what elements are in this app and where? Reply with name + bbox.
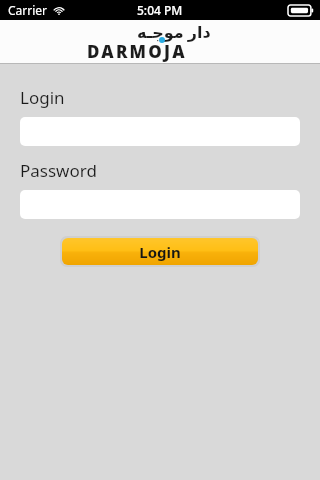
staticText: Login (20, 86, 65, 109)
staticText: Login (139, 242, 181, 262)
staticText: دار موجـه (137, 21, 211, 43)
staticText: 5:04 PM (137, 2, 183, 18)
staticText: DARMOJA (87, 40, 187, 63)
staticText: Password (20, 159, 97, 182)
button[interactable]: Login (62, 238, 258, 265)
staticText: Carrier (8, 2, 48, 18)
